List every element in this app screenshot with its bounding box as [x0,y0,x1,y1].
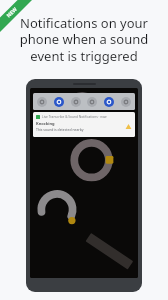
staticText: Notifications on your phone when a sound… [6,14,162,65]
staticText: NEW [5,6,19,19]
button[interactable]: Flashlight [87,97,97,107]
button[interactable]: Do not disturb [71,97,81,107]
staticText: Knocking [36,121,55,126]
staticText: Live Transcribe & Sound Notifications · … [42,115,107,119]
button[interactable]: Bluetooth [54,97,64,107]
other: New [0,0,32,32]
button[interactable]: Live Transcribe & Sound Notifications · … [33,112,135,137]
button[interactable]: Wi-Fi [37,97,47,107]
button[interactable]: Battery saver [121,97,131,107]
button[interactable]: Auto rotate [104,97,114,107]
staticText: This sound is detected nearby [36,127,84,132]
